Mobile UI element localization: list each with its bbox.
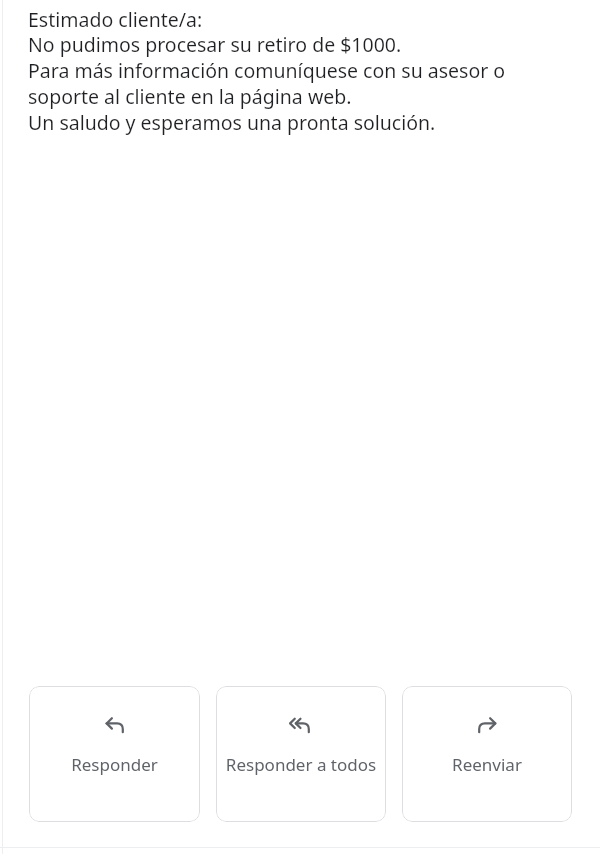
staticText: Estimado cliente/a: No pudimos procesar … [28, 6, 576, 136]
staticText: Responder [35, 753, 194, 776]
staticText: Responder a todos [222, 753, 380, 776]
staticText: Reenviar [408, 753, 566, 776]
other: Reenviar [474, 713, 500, 739]
button[interactable]: Reenviar [402, 686, 572, 822]
other: Responder [102, 713, 128, 739]
other: Responder a todos [288, 713, 314, 739]
button[interactable]: Responder [29, 686, 200, 822]
button[interactable]: Responder a todos [216, 686, 386, 822]
